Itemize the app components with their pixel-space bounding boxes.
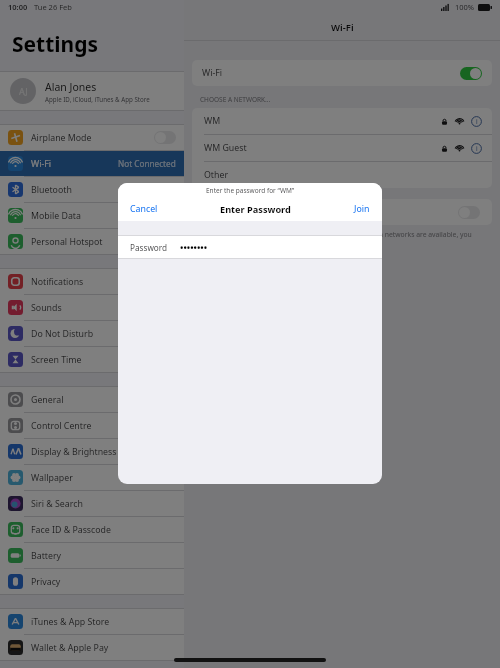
button[interactable]: More Info [471, 116, 482, 127]
other: Secured [441, 145, 448, 152]
staticText: Settings [12, 30, 99, 59]
other: Secured [441, 118, 448, 125]
staticText: Battery [31, 550, 62, 562]
button[interactable]: Password [118, 236, 382, 258]
staticText: Not Connected [118, 158, 176, 169]
button[interactable]: Siri & Search [0, 491, 184, 516]
staticText: Cancel [130, 203, 158, 215]
staticText: Sounds [31, 302, 62, 314]
button[interactable]: WM [192, 108, 492, 134]
staticText: Bluetooth [31, 184, 72, 196]
staticText: Personal Hotspot [31, 236, 103, 248]
button[interactable]: Display & Brightness [0, 439, 184, 464]
other: Signal [455, 144, 464, 153]
other: Signal [455, 117, 464, 126]
staticText: Privacy [31, 576, 61, 588]
staticText: Enter Password [220, 203, 291, 216]
staticText: Siri & Search [31, 498, 83, 510]
staticText: Wi-Fi [202, 67, 223, 79]
button[interactable]: General [0, 387, 184, 412]
staticText: Mobile Data [31, 210, 81, 222]
staticText: Wi-Fi [331, 21, 354, 34]
staticText: WM [204, 115, 221, 127]
staticText: Join [354, 203, 370, 215]
staticText: iTunes & App Store [31, 616, 110, 628]
staticText: Other [204, 169, 229, 181]
button[interactable]: Join [354, 203, 370, 215]
button[interactable]: AJ [0, 72, 184, 110]
staticText: General [31, 394, 64, 406]
staticText: 10:00 [8, 2, 28, 12]
staticText: 100% [455, 2, 475, 12]
staticText: Face ID & Passcode [31, 524, 111, 536]
button[interactable]: Toggle [460, 67, 482, 80]
button[interactable]: Wi-Fi [192, 60, 492, 86]
staticText: CHOOSE A NETWORK... [200, 95, 271, 104]
button[interactable]: More Info [471, 143, 482, 154]
button[interactable]: iTunes & App Store [0, 609, 184, 634]
button[interactable]: Cancel [130, 203, 158, 215]
button[interactable]: Toggle [154, 131, 176, 144]
button[interactable]: Sounds [0, 295, 184, 320]
button[interactable]: Wi-Fi [0, 151, 184, 176]
staticText: Enter the password for “WM” [206, 186, 295, 195]
button[interactable]: Wallpaper [0, 465, 184, 490]
staticText: Wi-Fi [31, 158, 52, 170]
staticText: AJ [19, 85, 28, 97]
staticText: Wallpaper [31, 472, 73, 484]
staticText: Known networks will be joined automatica… [200, 230, 484, 248]
staticText: Airplane Mode [31, 132, 92, 144]
button[interactable]: WM Guest [192, 135, 492, 161]
button[interactable]: Screen Time [0, 347, 184, 372]
button[interactable]: Face ID & Passcode [0, 517, 184, 542]
staticText: Alan Jones [45, 80, 97, 94]
button[interactable]: Bluetooth [0, 177, 184, 202]
button[interactable]: Wallet & Apple Pay [0, 635, 184, 660]
staticText: Tue 26 Feb [34, 2, 72, 12]
staticText: Wallet & Apple Pay [31, 642, 109, 654]
staticText: Apple ID, iCloud, iTunes & App Store [45, 95, 150, 103]
staticText: •••••••• [180, 241, 208, 253]
staticText: WM Guest [204, 142, 247, 154]
staticText: i [476, 117, 478, 126]
button[interactable]: Notifications [0, 269, 184, 294]
staticText: i [476, 144, 478, 153]
button[interactable]: Privacy [0, 569, 184, 594]
button[interactable]: Control Centre [0, 413, 184, 438]
button[interactable]: Toggle [458, 206, 480, 219]
staticText: Screen Time [31, 354, 82, 366]
button[interactable]: Mobile Data [0, 203, 184, 228]
staticText: Control Centre [31, 420, 92, 432]
button[interactable]: Personal Hotspot [0, 229, 184, 254]
button[interactable]: Do Not Disturb [0, 321, 184, 346]
staticText: Do Not Disturb [31, 328, 94, 340]
staticText: Ask to Join Networks [204, 206, 289, 218]
button[interactable]: Ask to Join Networks [192, 199, 492, 225]
staticText: Display & Brightness [31, 446, 117, 458]
staticText: Password [130, 242, 168, 253]
button[interactable]: Other [192, 162, 492, 188]
button[interactable]: Battery [0, 543, 184, 568]
button[interactable]: Airplane Mode [0, 125, 184, 150]
staticText: Notifications [31, 276, 84, 288]
